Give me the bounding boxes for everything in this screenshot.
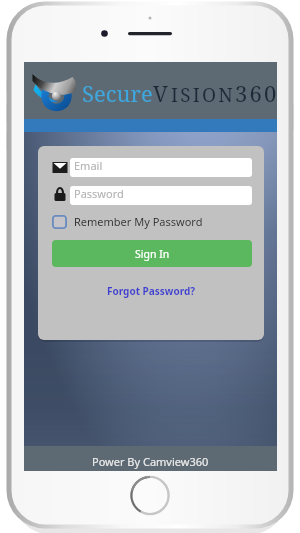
staticText: Password bbox=[74, 186, 124, 201]
button[interactable]: Password bbox=[70, 186, 252, 205]
staticText: Secure bbox=[82, 78, 153, 108]
button[interactable]: Forgot Password? bbox=[107, 284, 196, 298]
staticText: Email bbox=[74, 158, 103, 173]
button[interactable]: Sign In bbox=[52, 240, 252, 267]
button[interactable]: Email bbox=[70, 158, 252, 177]
staticText: V bbox=[153, 78, 171, 108]
staticText: Remember My Password bbox=[74, 214, 203, 229]
staticText: 360 bbox=[235, 78, 277, 108]
staticText: Sign In bbox=[135, 247, 170, 261]
staticText: Power By Camview360 bbox=[92, 454, 209, 469]
staticText: ISION bbox=[171, 82, 235, 108]
button[interactable]: Remember My Password bbox=[52, 214, 203, 229]
